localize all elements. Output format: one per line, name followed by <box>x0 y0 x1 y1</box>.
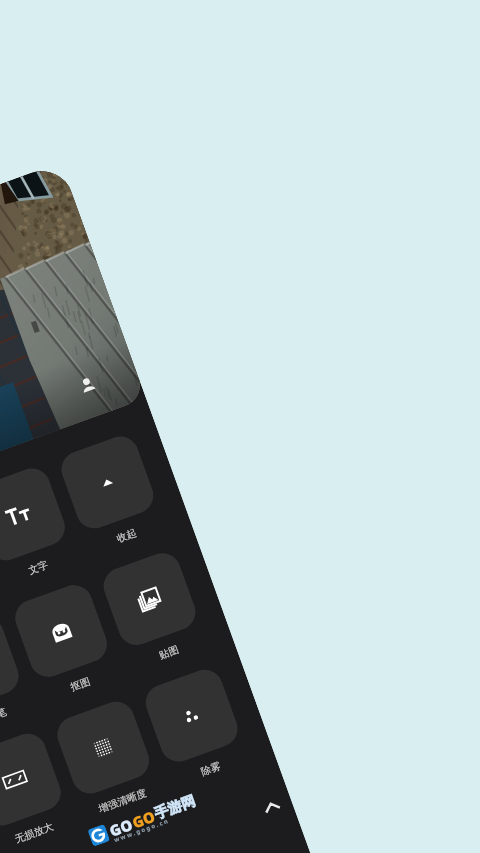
button[interactable]: 无损放大 <box>0 726 80 853</box>
staticText: 贴图 <box>157 643 180 662</box>
staticText: 无损放大 <box>13 820 55 846</box>
button[interactable]: 抠图 <box>3 577 127 706</box>
staticText: 文字 <box>27 558 50 577</box>
staticText: 抠图 <box>69 675 92 694</box>
staticText: 除雾 <box>199 759 222 778</box>
button[interactable]: 除雾 <box>134 662 257 791</box>
staticText: 收起 <box>115 526 138 545</box>
button[interactable]: GO <box>87 790 198 849</box>
button[interactable]: 贴图 <box>92 545 215 674</box>
staticText: 消除笔 <box>0 705 8 727</box>
button[interactable]: 收起 <box>50 429 173 558</box>
button[interactable]: 文字 <box>0 461 85 590</box>
staticText: 增强清晰度 <box>97 786 148 815</box>
staticText: 手游网 <box>152 792 198 823</box>
staticText: GO <box>107 814 136 841</box>
staticText: GO <box>129 806 159 833</box>
button[interactable]: Account <box>77 374 98 396</box>
button[interactable]: 增强清晰度 <box>45 694 169 823</box>
staticText: w w w . g o g o . c n <box>113 817 169 844</box>
button[interactable]: Expand toolbar <box>248 784 294 830</box>
button[interactable]: 消除笔 <box>0 609 38 738</box>
